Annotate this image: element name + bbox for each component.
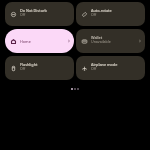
button[interactable]: Wallet xyxy=(76,29,145,53)
staticText: Off xyxy=(91,66,97,71)
button[interactable]: Home xyxy=(5,29,74,53)
button[interactable]: Flashlight xyxy=(5,56,74,80)
staticText: Off xyxy=(20,12,26,17)
button[interactable]: Auto-rotate xyxy=(76,2,145,26)
staticText: Home xyxy=(20,39,31,44)
staticText: Auto-rotate xyxy=(91,8,112,13)
staticText: Do Not Disturb xyxy=(20,8,47,13)
staticText: Flashlight xyxy=(20,62,38,67)
staticText: Unavailable xyxy=(91,39,111,44)
staticText: Off xyxy=(20,66,26,71)
button[interactable]: Do Not Disturb xyxy=(5,2,74,26)
staticText: Off xyxy=(91,12,97,17)
staticText: Wallet xyxy=(91,35,103,40)
staticText: Airplane mode xyxy=(91,62,118,67)
button[interactable]: Airplane mode xyxy=(76,56,145,80)
